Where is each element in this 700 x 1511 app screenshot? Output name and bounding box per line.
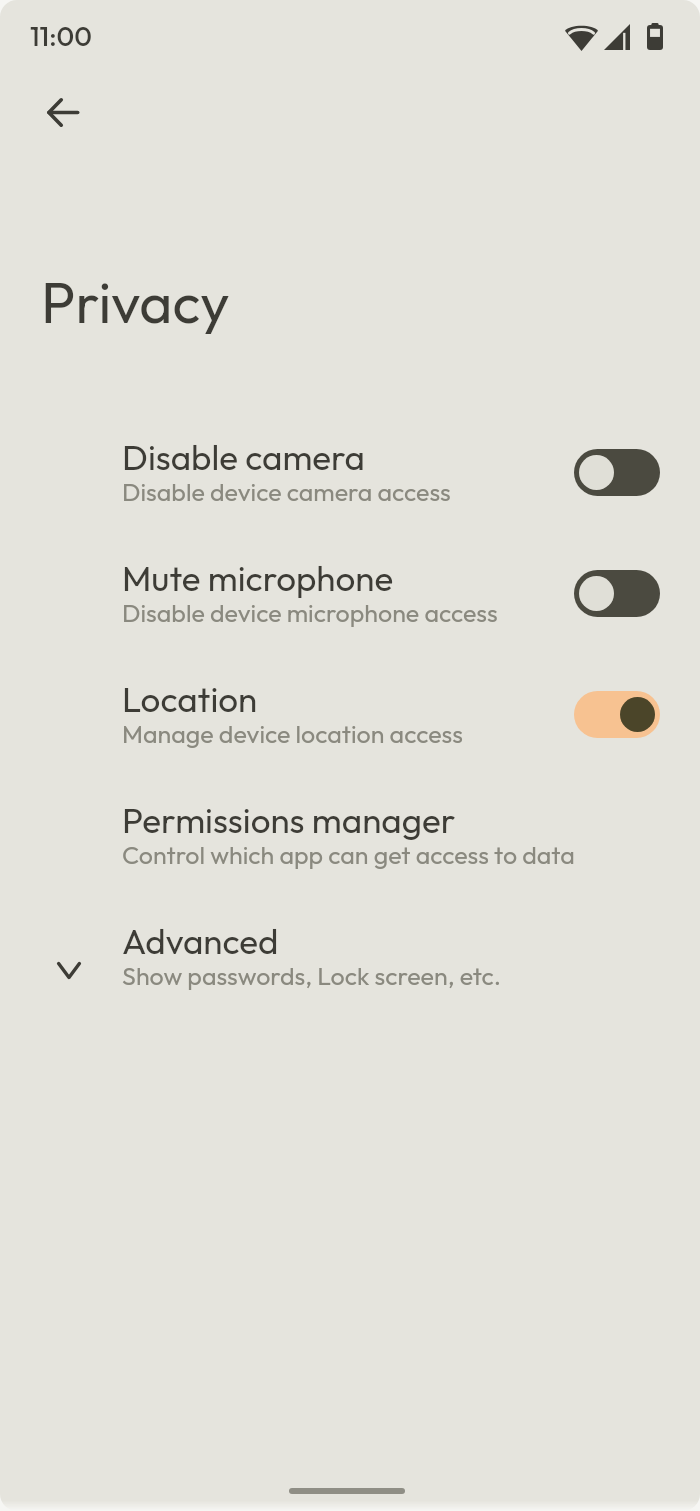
button[interactable]: Mute microphone xyxy=(0,533,700,654)
staticText: Privacy xyxy=(41,266,230,338)
button[interactable]: On xyxy=(574,691,660,738)
staticText: Permissions manager xyxy=(122,798,456,842)
staticText: Disable camera xyxy=(122,435,365,479)
staticText: Advanced xyxy=(122,919,279,963)
button[interactable]: Off xyxy=(574,570,660,617)
staticText: 11:00 xyxy=(30,19,92,53)
button[interactable]: Permissions manager xyxy=(0,775,700,896)
button[interactable]: Location xyxy=(0,654,700,775)
button[interactable]: Back xyxy=(34,84,90,140)
staticText: Disable device microphone access xyxy=(122,597,498,629)
staticText: Location xyxy=(122,677,258,721)
staticText: Control which app can get access to data xyxy=(122,839,575,871)
staticText: Mute microphone xyxy=(122,556,394,600)
staticText: Disable device camera access xyxy=(122,476,451,508)
staticText: Manage device location access xyxy=(122,718,463,750)
button[interactable]: Off xyxy=(574,449,660,496)
staticText: Show passwords, Lock screen, etc. xyxy=(122,960,502,992)
button[interactable]: Advanced xyxy=(0,896,700,1017)
button[interactable]: Disable camera xyxy=(0,412,700,533)
